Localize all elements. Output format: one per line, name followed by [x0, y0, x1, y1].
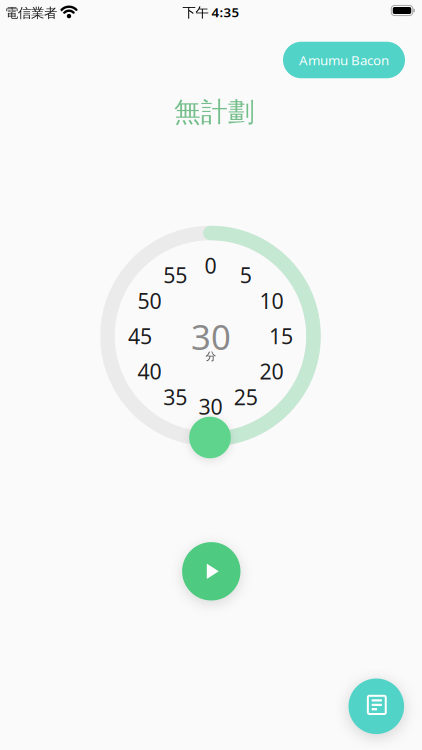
- staticText: 分: [205, 350, 216, 363]
- staticText: 20: [260, 357, 284, 385]
- staticText: 0: [204, 251, 216, 280]
- button[interactable]: [348, 678, 404, 734]
- staticText: 35: [163, 383, 187, 411]
- staticText: 電信業者: [5, 5, 57, 21]
- staticText: 15: [269, 322, 293, 350]
- staticText: 30: [198, 392, 222, 421]
- staticText: 無計劃: [174, 96, 255, 128]
- staticText: 50: [137, 287, 161, 315]
- button[interactable]: [182, 542, 240, 600]
- button[interactable]: Amumu Bacon: [283, 42, 405, 78]
- staticText: 5: [240, 261, 252, 289]
- staticText: 45: [128, 322, 152, 350]
- staticText: 10: [260, 287, 284, 315]
- staticText: 30: [191, 313, 231, 359]
- staticText: 55: [163, 261, 187, 289]
- staticText: 40: [137, 357, 161, 385]
- staticText: 下午 4:35: [182, 3, 239, 21]
- staticText: 25: [234, 383, 258, 411]
- staticText: Amumu Bacon: [299, 51, 389, 69]
